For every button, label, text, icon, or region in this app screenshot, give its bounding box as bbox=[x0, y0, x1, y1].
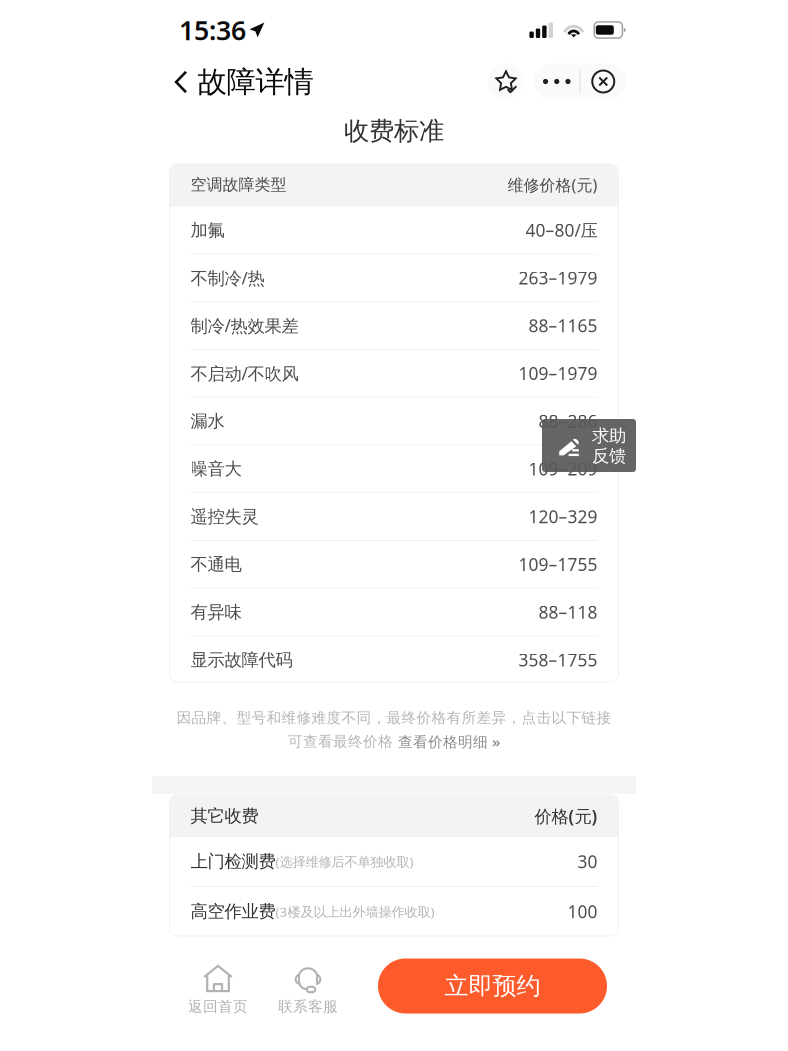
staticText: 收费标准 bbox=[344, 115, 444, 146]
staticText: 100 bbox=[567, 900, 597, 923]
staticText: 88–286 bbox=[538, 410, 597, 433]
staticText: 故障详情 bbox=[197, 64, 313, 100]
staticText: 联系客服 bbox=[278, 997, 338, 1015]
staticText: 上门检测费 bbox=[190, 851, 275, 872]
button[interactable]: 查看价格明细 » bbox=[398, 732, 500, 751]
staticText: 查看价格明细 » bbox=[398, 732, 500, 751]
staticText: 120–329 bbox=[528, 505, 597, 528]
staticText: 漏水 bbox=[190, 410, 224, 432]
staticText: 263–1979 bbox=[518, 266, 597, 289]
staticText: 358–1755 bbox=[518, 648, 597, 671]
staticText: (3楼及以上出外墙操作收取) bbox=[275, 903, 434, 920]
staticText: 不通电 bbox=[190, 554, 241, 575]
button[interactable]: 联系客服 bbox=[262, 958, 354, 1022]
staticText: 30 bbox=[577, 850, 597, 873]
button[interactable]: 立即预约 bbox=[378, 958, 607, 1013]
staticText: 价格(元) bbox=[534, 804, 597, 827]
button[interactable]: 更多 bbox=[534, 63, 579, 99]
staticText: 其它收费 bbox=[190, 805, 258, 827]
staticText: 88–1165 bbox=[528, 314, 597, 337]
staticText: 88–118 bbox=[538, 601, 597, 624]
staticText: 制冷/热效果差 bbox=[190, 314, 298, 337]
staticText: 显示故障代码 bbox=[190, 649, 292, 670]
staticText: 可查看最终价格 bbox=[288, 732, 393, 750]
button[interactable]: 求助 bbox=[542, 419, 636, 472]
staticText: 有异味 bbox=[190, 601, 241, 623]
staticText: 不启动/不吹风 bbox=[190, 362, 298, 385]
button[interactable]: 故障详情 bbox=[166, 56, 321, 108]
staticText: 15:36 bbox=[179, 12, 246, 48]
staticText: 40–80/压 bbox=[525, 219, 597, 242]
staticText: 立即预约 bbox=[444, 971, 540, 1001]
staticText: 高空作业费 bbox=[190, 901, 275, 922]
staticText: 不制冷/热 bbox=[190, 266, 264, 289]
staticText: 反馈 bbox=[592, 445, 626, 467]
staticText: 加氟 bbox=[190, 219, 224, 241]
button[interactable]: 收藏 bbox=[488, 63, 524, 99]
staticText: 返回首页 bbox=[188, 997, 248, 1015]
staticText: 109–209 bbox=[528, 457, 597, 480]
staticText: (选择维修后不单独收取) bbox=[275, 853, 413, 870]
staticText: 109–1979 bbox=[518, 362, 597, 385]
staticText: 空调故障类型 bbox=[190, 175, 286, 195]
staticText: 109–1755 bbox=[518, 553, 597, 576]
staticText: 噪音大 bbox=[190, 458, 241, 479]
staticText: 维修价格(元) bbox=[507, 174, 597, 195]
staticText: 遥控失灵 bbox=[190, 506, 258, 527]
staticText: 求助 bbox=[592, 425, 626, 447]
button[interactable]: 关闭 bbox=[580, 63, 626, 99]
button[interactable]: 返回首页 bbox=[172, 958, 264, 1022]
staticText: 因品牌、型号和维修难度不同，最终价格有所差异，点击以下链接 bbox=[176, 709, 611, 727]
